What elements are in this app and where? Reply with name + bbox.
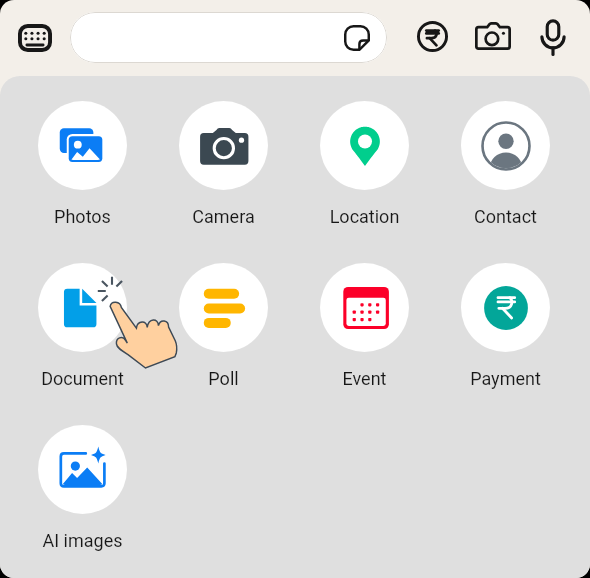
button[interactable]: Photos: [38, 101, 127, 227]
staticText: AI images: [38, 530, 127, 551]
button[interactable]: Voice message: [531, 14, 575, 58]
staticText: Poll: [179, 368, 268, 389]
staticText: Document: [38, 368, 127, 389]
button[interactable]: Stickers: [70, 12, 387, 63]
button[interactable]: Payment: [461, 263, 550, 389]
button[interactable]: Stickers: [341, 22, 373, 54]
staticText: Camera: [179, 206, 268, 227]
button[interactable]: Payment: [410, 14, 454, 58]
button[interactable]: AI images: [38, 425, 127, 551]
staticText: Payment: [461, 368, 550, 389]
button[interactable]: Location: [320, 101, 409, 227]
button[interactable]: Event: [320, 263, 409, 389]
staticText: Photos: [38, 206, 127, 227]
button[interactable]: Camera: [471, 14, 515, 58]
button[interactable]: Keyboard: [16, 19, 54, 57]
button[interactable]: Poll: [179, 263, 268, 389]
staticText: Contact: [461, 206, 550, 227]
button[interactable]: Camera: [179, 101, 268, 227]
staticText: Location: [320, 206, 409, 227]
staticText: Event: [320, 368, 409, 389]
button[interactable]: Contact: [461, 101, 550, 227]
button[interactable]: Document: [38, 263, 127, 389]
